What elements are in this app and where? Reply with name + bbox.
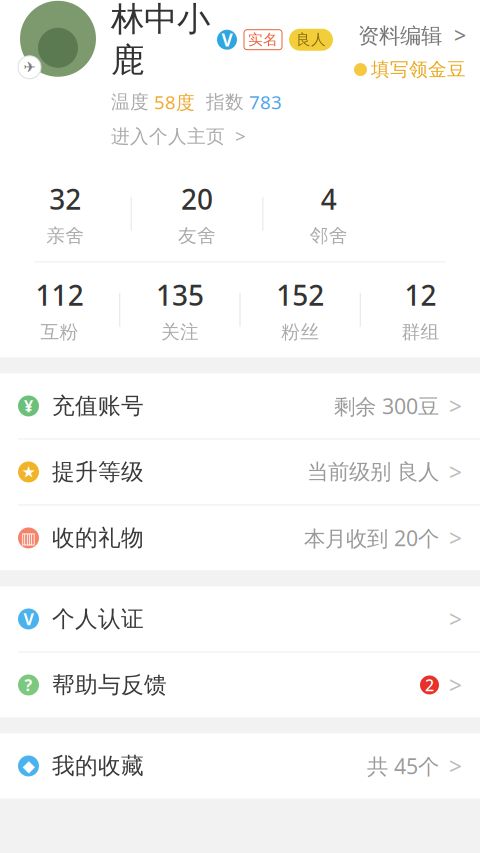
button[interactable]: 152	[240, 276, 360, 343]
staticText: 58度	[154, 90, 195, 114]
button[interactable]: 进入个人主页 >	[111, 123, 246, 148]
staticText: 指数	[200, 91, 244, 113]
button[interactable]: V	[0, 586, 480, 651]
staticText: 进入个人主页 >	[111, 123, 246, 148]
staticText: 152	[276, 276, 324, 313]
button[interactable]: ◆	[0, 733, 480, 798]
staticText: 112	[36, 276, 84, 313]
staticText: 良人	[296, 31, 326, 49]
staticText: >	[449, 391, 462, 421]
staticText: 关注	[161, 320, 199, 343]
staticText: 温度	[111, 91, 149, 113]
staticText: V	[23, 608, 33, 629]
staticText: 12	[404, 276, 436, 313]
button[interactable]: 135	[120, 276, 240, 343]
button[interactable]: 填写领金豆	[354, 58, 466, 81]
staticText: 填写领金豆	[371, 58, 466, 81]
button[interactable]: 112	[0, 276, 119, 343]
staticText: 互粉	[41, 320, 79, 343]
staticText: 友舍	[178, 224, 216, 247]
staticText: 收的礼物	[52, 524, 144, 552]
staticText: 32	[49, 180, 81, 217]
staticText: 群组	[401, 320, 439, 343]
staticText: 提升等级	[52, 458, 144, 486]
staticText: 实名	[248, 31, 278, 49]
button[interactable]: ¥	[0, 373, 480, 438]
staticText: ◆	[22, 757, 34, 775]
staticText: V	[221, 28, 232, 51]
staticText: 帮助与反馈	[52, 671, 167, 699]
staticText: ✈	[23, 59, 35, 75]
button[interactable]: 12	[361, 276, 480, 343]
staticText: 135	[156, 276, 204, 313]
staticText: ▥	[21, 529, 36, 547]
staticText: ?	[24, 674, 32, 695]
staticText: ★	[21, 463, 35, 481]
staticText: 共 45个	[367, 752, 439, 780]
staticText: >	[449, 457, 462, 487]
staticText: 邻舍	[310, 224, 348, 247]
button[interactable]: 20	[132, 180, 262, 247]
staticText: 林中小鹿	[111, 0, 210, 81]
staticText: ¥	[24, 395, 33, 416]
staticText: >	[449, 604, 462, 634]
staticText: >	[449, 751, 462, 781]
staticText: 资料编辑 >	[358, 21, 466, 49]
staticText: 个人认证	[52, 605, 144, 633]
staticText: >	[449, 670, 462, 700]
staticText: 2	[425, 674, 434, 695]
staticText: >	[449, 523, 462, 553]
button[interactable]: ★	[0, 439, 480, 504]
staticText: 20	[181, 180, 213, 217]
button[interactable]: ▥	[0, 505, 480, 570]
staticText: 粉丝	[281, 320, 319, 343]
staticText: 本月收到 20个	[304, 524, 439, 552]
staticText: 亲舍	[46, 224, 84, 247]
staticText: 剩余 300豆	[334, 392, 439, 420]
staticText: 783	[249, 90, 282, 114]
button[interactable]: 4	[263, 180, 394, 247]
staticText: 充值账号	[52, 392, 144, 420]
button[interactable]: 32	[0, 180, 131, 247]
button[interactable]: 资料编辑 >	[358, 21, 466, 49]
staticText: 我的收藏	[52, 752, 144, 780]
staticText: 当前级别 良人	[307, 459, 439, 485]
button[interactable]: ?	[0, 652, 480, 717]
staticText: 4	[321, 180, 337, 217]
